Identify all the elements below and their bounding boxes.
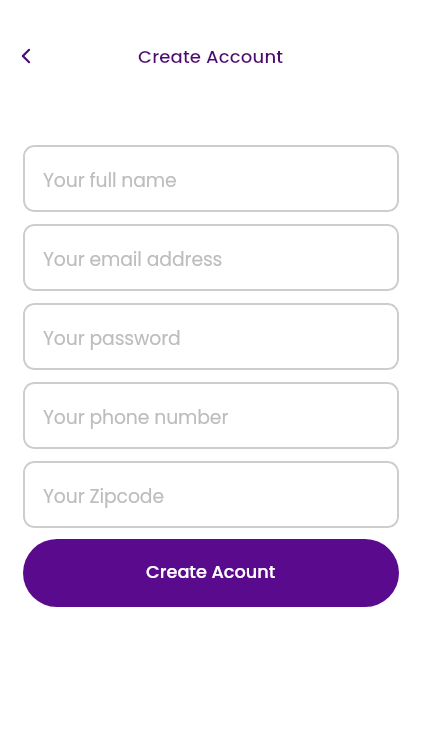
staticText: Your email address: [43, 246, 223, 272]
button[interactable]: Your phone number: [23, 382, 399, 449]
button[interactable]: Your email address: [23, 224, 399, 291]
staticText: Your Zipcode: [43, 483, 164, 509]
staticText: Create Acount: [146, 559, 276, 584]
staticText: Create Account: [138, 44, 284, 69]
button[interactable]: Your Zipcode: [23, 461, 399, 528]
staticText: Your full name: [43, 167, 177, 193]
button[interactable]: Create Acount: [23, 539, 399, 607]
button[interactable]: Back: [6, 36, 46, 76]
staticText: Your password: [43, 325, 181, 351]
staticText: Your phone number: [43, 404, 229, 430]
button[interactable]: Your password: [23, 303, 399, 370]
button[interactable]: Your full name: [23, 145, 399, 212]
